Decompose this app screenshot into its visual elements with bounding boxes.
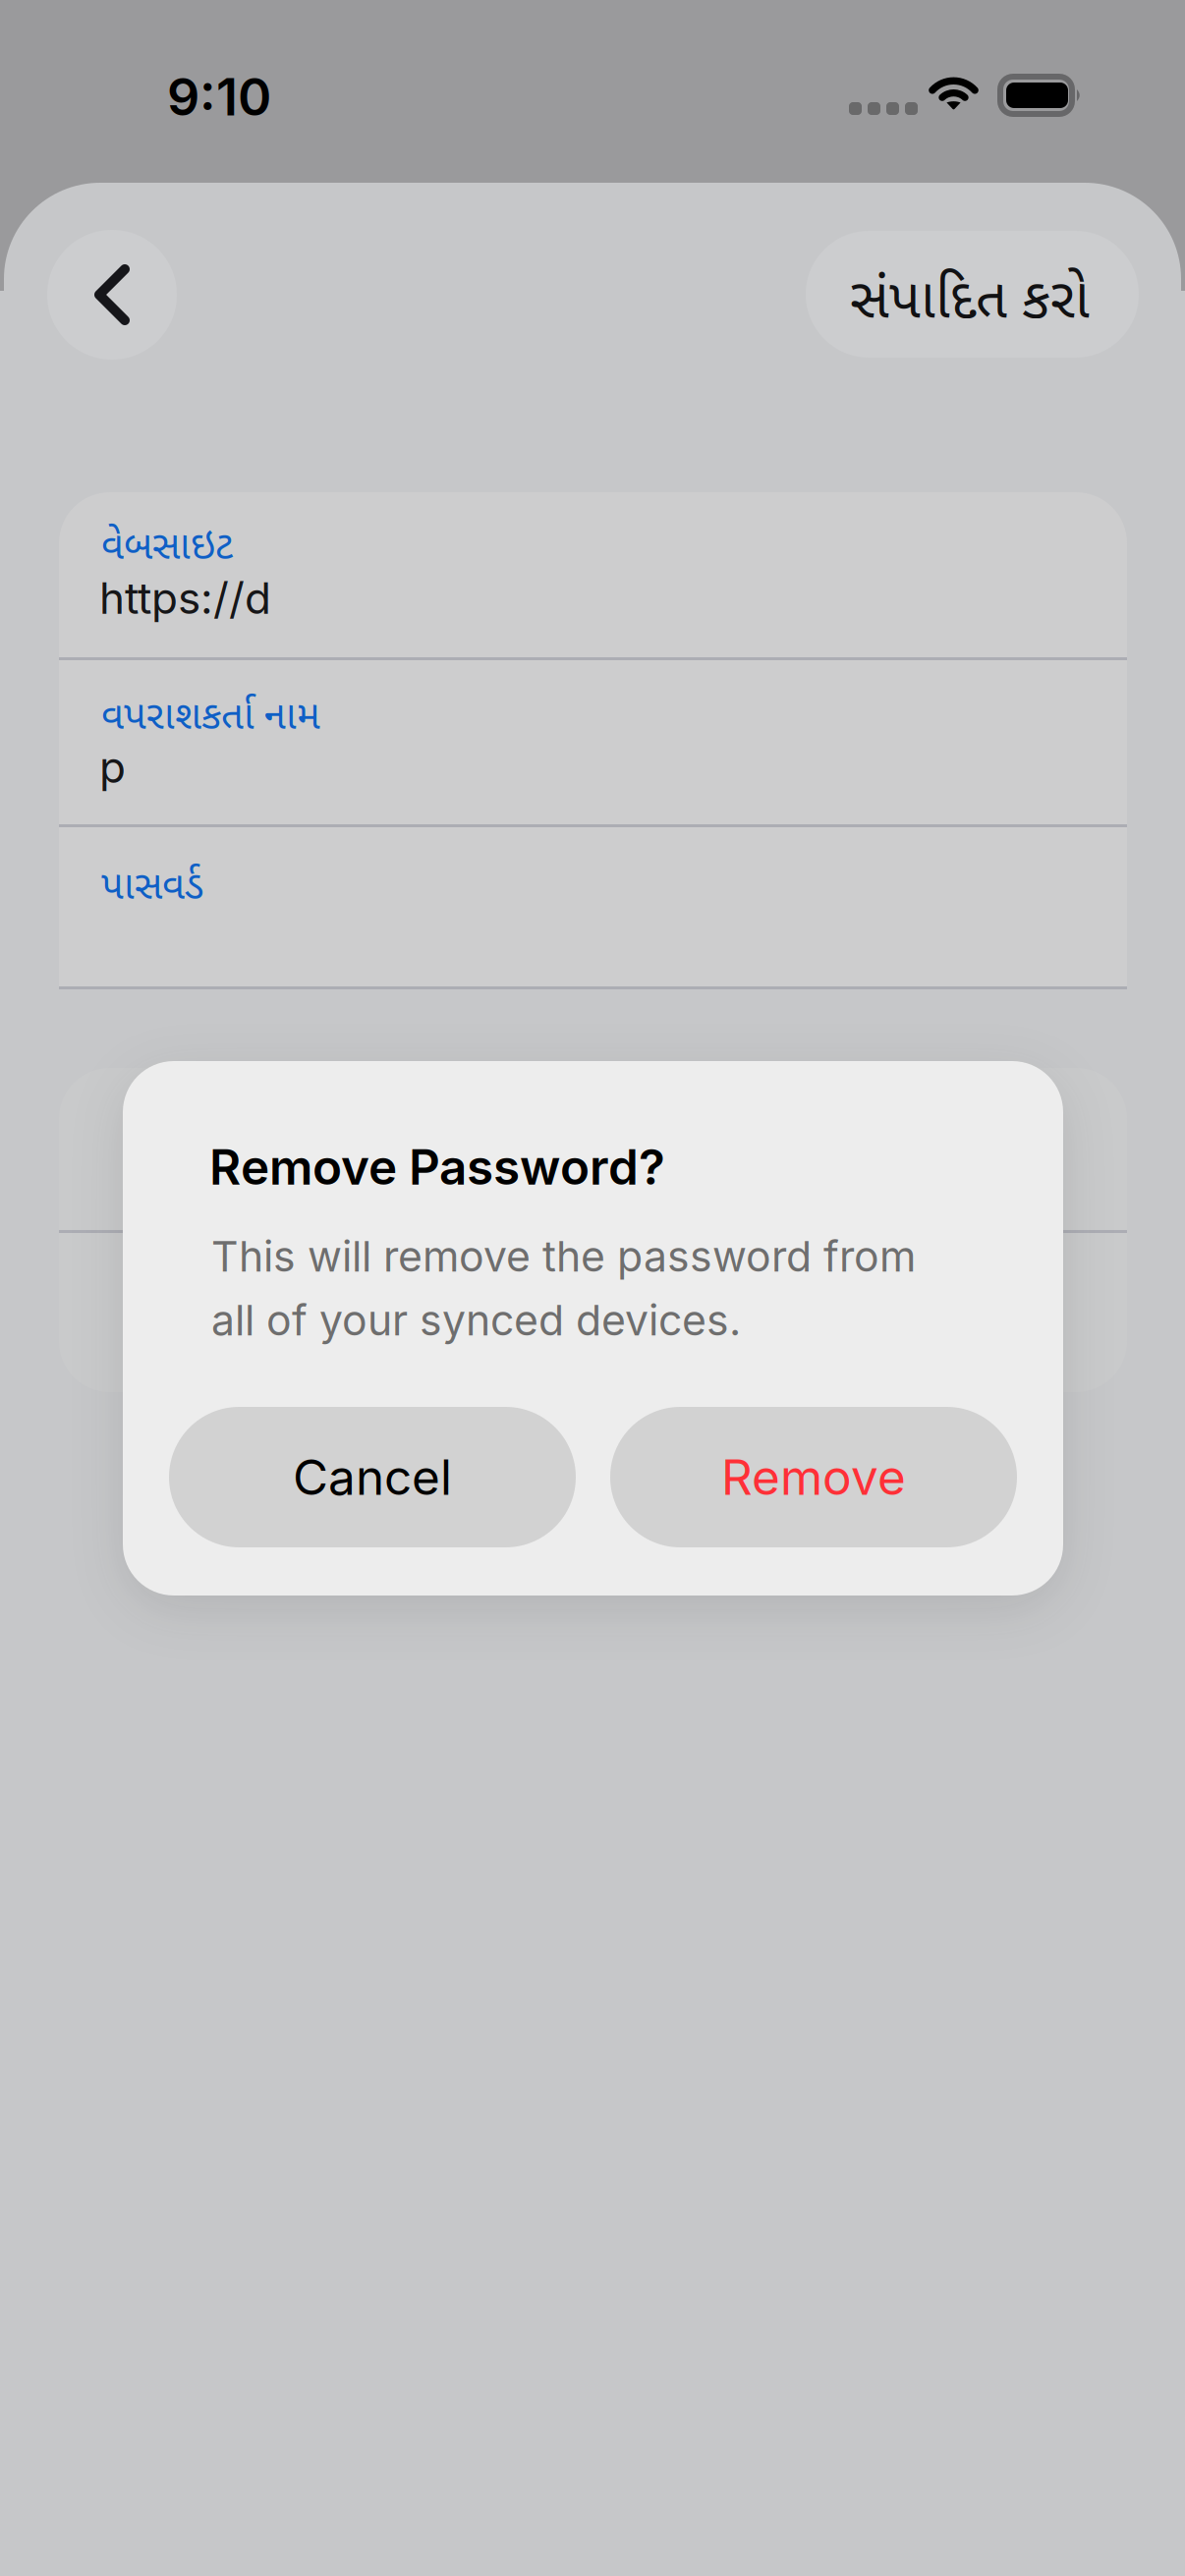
staticText: https://d: [99, 572, 271, 624]
staticText: 9:10: [167, 66, 271, 128]
staticText: Remove Password?: [209, 1138, 665, 1196]
staticText: વપરાશકર્તા નામ: [101, 694, 320, 745]
button[interactable]: વપરાશકર્તા નામ: [59, 660, 1127, 827]
button[interactable]: Remove: [610, 1407, 1017, 1547]
button[interactable]: Back: [47, 230, 177, 360]
button[interactable]: સંપાદિત કરો: [806, 231, 1139, 358]
staticText: પાસવર્ડ: [101, 864, 203, 915]
staticText: p: [99, 741, 126, 793]
button[interactable]: વેબસાઇટ: [59, 492, 1127, 657]
staticText: Remove: [721, 1448, 906, 1506]
button[interactable]: Cancel: [169, 1407, 576, 1547]
staticText: all of your synced devices.: [211, 1295, 741, 1346]
staticText: Cancel: [293, 1448, 452, 1506]
staticText: સંપાદિત કરો: [850, 268, 1090, 340]
staticText: વેબસાઇટ: [101, 524, 233, 575]
staticText: This will remove the password from: [211, 1231, 916, 1282]
button[interactable]: પાસવર્ડ: [59, 827, 1127, 988]
